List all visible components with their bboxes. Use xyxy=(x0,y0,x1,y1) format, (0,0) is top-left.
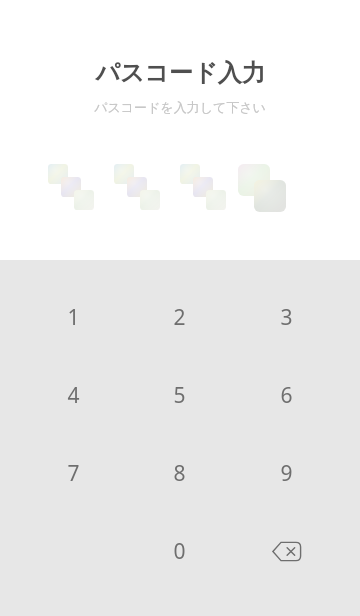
button[interactable]: 6 xyxy=(233,356,340,434)
staticText: パスコードを入力して下さい xyxy=(94,99,266,115)
button[interactable]: 5 xyxy=(126,356,233,434)
staticText: 1 xyxy=(67,303,80,332)
button[interactable]: 1 xyxy=(20,278,126,356)
button[interactable]: 0 xyxy=(126,512,233,590)
button[interactable]: 3 xyxy=(233,278,340,356)
button[interactable]: 2 xyxy=(126,278,233,356)
staticText: 4 xyxy=(67,381,80,410)
button[interactable]: 9 xyxy=(233,434,340,512)
staticText: 6 xyxy=(280,381,293,410)
staticText: 9 xyxy=(280,459,293,488)
staticText: パスコード入力 xyxy=(95,58,266,88)
staticText: 0 xyxy=(173,537,186,566)
staticText: 2 xyxy=(173,303,186,332)
button[interactable]: Delete xyxy=(233,512,340,590)
staticText: 7 xyxy=(67,459,80,488)
button[interactable]: 8 xyxy=(126,434,233,512)
button[interactable]: 4 xyxy=(20,356,126,434)
button[interactable]: 7 xyxy=(20,434,126,512)
staticText: 5 xyxy=(173,381,186,410)
staticText: 8 xyxy=(173,459,186,488)
staticText: 3 xyxy=(280,303,293,332)
